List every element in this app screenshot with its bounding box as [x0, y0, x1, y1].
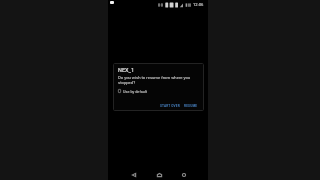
button[interactable]: RESUME: [183, 103, 199, 109]
staticText: START OVER: [160, 104, 180, 108]
staticText: RESUME: [184, 104, 198, 108]
button[interactable]: Back: [128, 169, 140, 180]
button[interactable]: Home: [153, 169, 165, 180]
button[interactable]: Recents: [178, 169, 190, 180]
staticText: NEX_1: [118, 67, 135, 73]
staticText: 12:06: [193, 2, 204, 7]
button[interactable]: START OVER: [159, 103, 181, 109]
staticText: Do you wish to resume from where you sto…: [118, 75, 197, 85]
button[interactable]: Use by default: [118, 89, 148, 93]
staticText: Use by default: [123, 89, 148, 93]
